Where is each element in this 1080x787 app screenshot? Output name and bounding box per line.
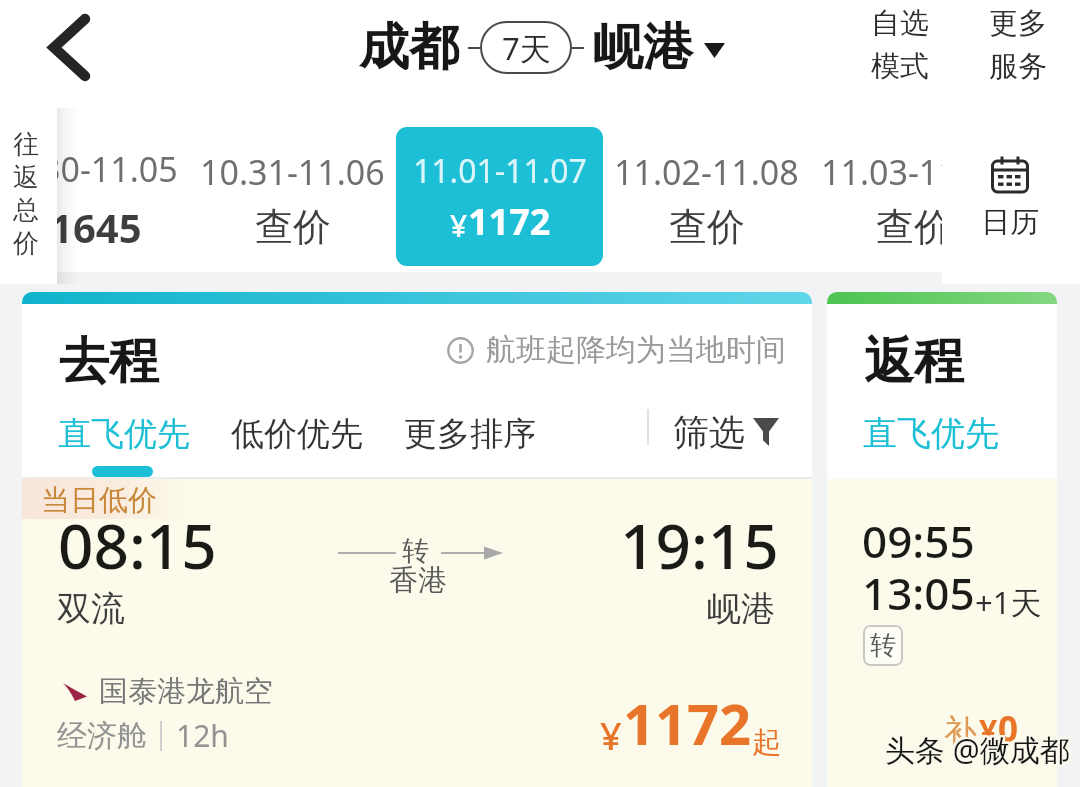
staticText: 1172 [468,197,551,246]
staticText: 头条 @微成都 [884,730,1069,771]
staticText: 岘港 [707,587,775,630]
staticText: 直飞优先 [58,413,190,455]
staticText: 头条 @微成都 [886,730,1071,771]
staticText: ¥ [450,205,468,246]
staticText: 0 [998,705,1019,753]
staticText: 去程 [59,330,159,393]
staticText: 查价 [255,203,331,251]
staticText: 价 [13,227,39,260]
staticText: 往 [13,128,39,161]
staticText: 当日低价 [41,482,157,519]
staticText: 09:55 [862,511,975,571]
staticText: 10.31-11.06 [200,149,385,195]
staticText: 头条 @微成都 [886,727,1071,768]
staticText: 头条 @微成都 [887,728,1072,769]
button[interactable]: 返程 [827,292,1057,787]
staticText: 头条 @微成都 [883,730,1068,771]
staticText: 头条 @微成都 [884,729,1069,770]
staticText: 日历 [981,204,1039,241]
staticText: 双流 [57,587,125,630]
staticText: 头条 @微成都 [887,727,1072,768]
button[interactable]: 10.30-11.05 [0,108,189,284]
staticText: 起 [752,724,781,761]
button[interactable]: 11.02-11.08 [603,108,810,284]
button[interactable]: 11.03-11.09 [810,108,1017,284]
staticText: 筛选 [673,410,745,455]
staticText: 头条 @微成都 [883,727,1068,768]
staticText: 19:15 [620,503,779,587]
staticText: 总 [13,194,39,227]
staticText: 香港 [389,562,447,599]
button[interactable]: 低价优先 [231,413,363,455]
staticText: 头条 @微成都 [884,728,1069,769]
staticText: 08:15 [58,503,217,587]
staticText: 头条 @微成都 [883,728,1068,769]
button[interactable]: 日历 Calendar [942,108,1080,284]
staticText: 头条 @微成都 [887,730,1072,771]
staticText: 转 [402,534,429,568]
staticText: 头条 @微成都 [884,731,1069,772]
staticText: 头条 @微成都 [884,727,1069,768]
button[interactable]: 更多排序 [404,413,536,455]
staticText: 7天 [502,27,551,69]
button[interactable]: 更多 [988,5,1048,85]
staticText: 头条 @微成都 [887,731,1072,772]
button[interactable]: 10.31-11.06 [189,108,396,284]
button[interactable]: 直飞优先 [58,413,190,455]
staticText: 返 [13,161,39,194]
staticText: 11.03-11.09 [821,149,1006,195]
staticText: 11.01-11.07 [413,149,587,193]
staticText: 头条 @微成都 [885,728,1070,769]
staticText: 模式 [871,48,929,85]
staticText: 头条 @微成都 [886,731,1071,772]
staticText: 航班起降均为当地时间 [486,331,786,369]
button[interactable]: 11.01-11.07 [396,108,603,284]
staticText: 国泰港龙航空 [99,673,273,710]
staticText: +1天 [975,581,1042,623]
staticText: 成都 [359,16,459,79]
button[interactable]: 自选 [870,5,930,85]
staticText: 低价优先 [231,413,363,455]
staticText: 11.02-11.08 [614,149,799,195]
button[interactable]: 筛选 [673,410,779,455]
staticText: 10.30-11.05 [0,146,178,192]
staticText: 经济舱 [57,717,147,755]
staticText: 转 [870,629,896,662]
staticText: 头条 @微成都 [885,730,1070,771]
staticText: 岘港 [593,16,693,79]
staticText: 头条 @微成都 [883,731,1068,772]
staticText: 查价 [669,203,745,251]
staticText: 头条 @微成都 [886,729,1071,770]
staticText: 查价 [876,203,952,251]
staticText: ¥ [600,709,622,761]
staticText: 1645 [50,200,142,254]
staticText: 返程 [864,330,964,393]
staticText: 更多排序 [404,413,536,455]
staticText: ¥ [979,709,998,753]
staticText: 直飞优先 [863,412,999,455]
staticText: 补 [944,711,977,753]
staticText: 头条 @微成都 [885,729,1070,770]
staticText: 头条 @微成都 [883,729,1068,770]
button[interactable]: Back [0,0,130,96]
staticText: 13:05 [862,563,975,623]
staticText: 头条 @微成都 [887,729,1072,770]
staticText: 头条 @微成都 [886,728,1071,769]
staticText: 更多 [989,5,1047,42]
staticText: 自选 [871,5,929,42]
staticText: 头条 @微成都 [885,731,1070,772]
staticText: 服务 [989,48,1047,85]
button[interactable]: 直飞优先 [863,412,999,455]
staticText: 头条 @微成都 [885,727,1070,768]
button[interactable]: 去程 [22,292,812,787]
staticText: 12h [176,715,229,756]
staticText: ¥ [30,208,50,254]
staticText: 1172 [623,685,752,761]
